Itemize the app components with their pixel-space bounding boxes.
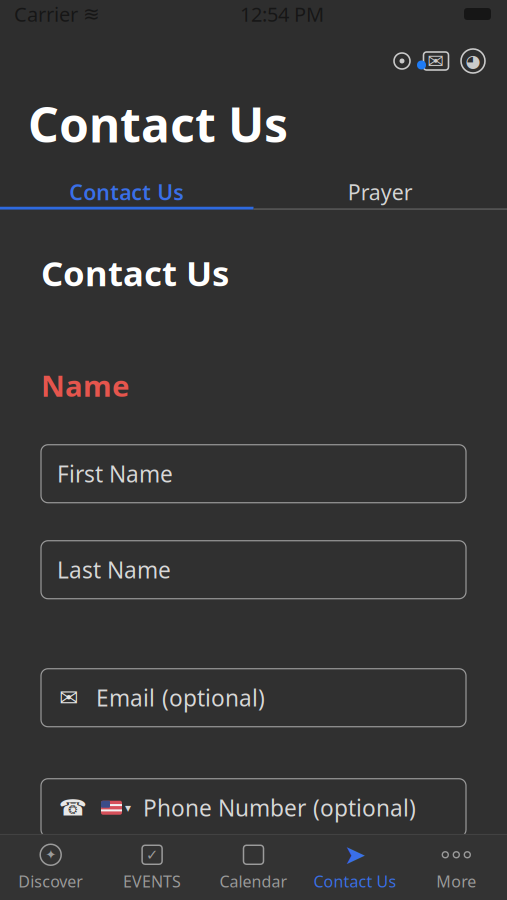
staticText: Contact Us — [28, 92, 288, 156]
staticText: Contact Us — [41, 250, 229, 296]
button[interactable]: ✓ — [101, 835, 203, 900]
button[interactable]: Contact Us — [0, 162, 253, 210]
staticText: ◕ — [465, 51, 480, 71]
staticText: ✉ — [427, 50, 444, 72]
button[interactable]: Messages — [417, 46, 455, 76]
button[interactable]: ➤ — [304, 835, 406, 900]
staticText: ➤ — [344, 840, 366, 870]
staticText: (optional) — [313, 793, 416, 823]
staticText: ☎ — [59, 795, 87, 821]
staticText: First Name — [57, 459, 173, 489]
button[interactable]: More — [406, 835, 507, 900]
staticText: ✦ — [45, 847, 56, 862]
button[interactable]: Prayer — [253, 162, 507, 210]
button[interactable]: Calendar — [203, 835, 304, 900]
staticText: Prayer — [348, 178, 413, 206]
staticText: ▾ — [125, 801, 131, 814]
staticText: EVENTS — [123, 871, 181, 892]
staticText: Phone Number — [143, 793, 306, 823]
staticText: (optional) — [162, 683, 265, 713]
staticText: Name — [41, 366, 130, 405]
button[interactable]: Profile — [455, 46, 491, 76]
staticText: More — [436, 871, 476, 892]
staticText: Calendar — [219, 871, 287, 892]
staticText: 12:54 PM — [240, 1, 324, 27]
staticText: ≋ — [83, 3, 100, 25]
staticText: Email — [96, 683, 155, 713]
staticText: Contact Us — [69, 178, 184, 206]
staticText: ✓ — [146, 846, 158, 863]
staticText: Discover — [18, 871, 83, 892]
button[interactable]: Locations — [387, 46, 417, 76]
button[interactable]: ✦ — [0, 835, 101, 900]
staticText: ✉ — [59, 685, 78, 711]
staticText: I want to... — [41, 861, 154, 891]
staticText: Carrier — [14, 1, 78, 27]
staticText: Contact Us — [313, 871, 396, 892]
staticText: Last Name — [57, 555, 171, 585]
